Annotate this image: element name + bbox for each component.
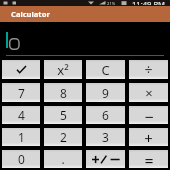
staticText: +	[144, 128, 153, 146]
button[interactable]	[0, 22, 170, 58]
button[interactable]: .	[44, 150, 82, 168]
staticText: 1	[18, 129, 25, 145]
button[interactable]: 9	[86, 83, 125, 102]
button[interactable]: Plus or minus	[86, 150, 125, 168]
button[interactable]: 0	[2, 150, 40, 168]
staticText: −	[144, 106, 154, 124]
button[interactable]: 1	[2, 128, 40, 146]
button[interactable]: −	[129, 106, 168, 124]
staticText: 6	[102, 107, 109, 123]
staticText: 9	[102, 85, 109, 101]
button[interactable]: 4	[2, 106, 40, 124]
button[interactable]: Calculator	[0, 6, 170, 22]
staticText: 0	[18, 151, 25, 167]
button[interactable]: =	[129, 150, 168, 168]
staticText: Calculator	[11, 9, 50, 19]
button[interactable]: C	[86, 60, 125, 79]
button[interactable]: +	[129, 128, 168, 146]
button[interactable]: 2	[44, 128, 82, 146]
button[interactable]: ×	[129, 83, 168, 102]
staticText: C	[101, 61, 110, 79]
staticText: ÷	[144, 60, 153, 79]
staticText: .	[61, 151, 65, 167]
staticText: 3	[102, 129, 109, 145]
staticText: 11:49 PM	[132, 0, 165, 5]
staticText: x²	[57, 61, 69, 79]
staticText: 5	[60, 107, 67, 123]
button[interactable]: 5	[44, 106, 82, 124]
button[interactable]: 8	[44, 83, 82, 102]
button[interactable]: 3	[86, 128, 125, 146]
button[interactable]: 6	[86, 106, 125, 124]
button[interactable]: ÷	[129, 60, 168, 79]
staticText: 21%	[107, 1, 116, 7]
staticText: 7	[18, 85, 25, 101]
staticText: ×	[145, 84, 153, 102]
staticText: 2	[60, 129, 67, 145]
button[interactable]: x²	[44, 60, 82, 79]
staticText: =	[144, 150, 154, 168]
staticText: 4	[18, 107, 25, 123]
button[interactable]: Square root	[2, 60, 40, 79]
staticText: 8	[60, 85, 67, 101]
button[interactable]: 7	[2, 83, 40, 102]
